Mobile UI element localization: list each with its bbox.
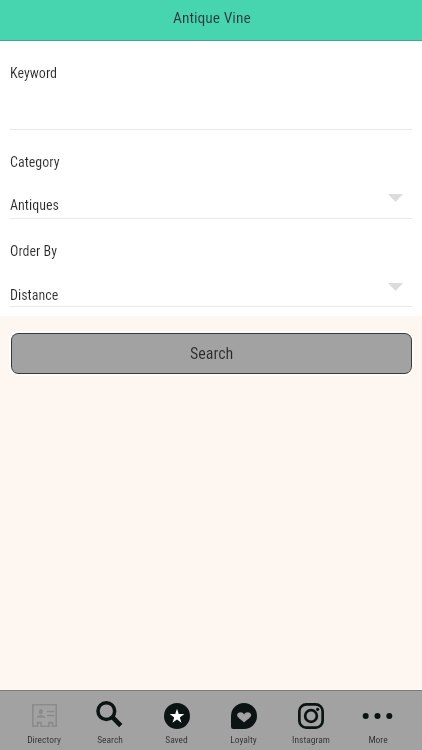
staticText: Category [10, 154, 60, 170]
staticText: Keyword [10, 65, 57, 81]
button[interactable]: Loyalty [210, 691, 277, 750]
button[interactable]: Search [12, 334, 411, 373]
staticText: Directory [27, 734, 61, 745]
other: Saved [164, 703, 190, 729]
staticText: Search [97, 734, 123, 745]
button[interactable]: Instagram [277, 691, 344, 750]
other: Loyalty [231, 703, 257, 729]
staticText: Search [190, 344, 234, 363]
button[interactable]: Search [77, 691, 143, 750]
staticText: Saved [165, 734, 188, 745]
staticText: Instagram [292, 734, 330, 745]
other: More [364, 712, 391, 720]
other: Search [97, 702, 124, 729]
staticText: Antique Vine [173, 9, 251, 27]
staticText: Distance [10, 287, 59, 303]
button[interactable]: Directory [11, 691, 77, 750]
button[interactable]: Saved [143, 691, 210, 750]
staticText: More [368, 734, 388, 745]
other: Instagram [298, 703, 324, 729]
staticText: Antiques [10, 197, 59, 213]
button[interactable]: More [344, 691, 411, 750]
other: Directory [32, 704, 57, 727]
staticText: Loyalty [230, 734, 257, 745]
staticText: Order By [10, 243, 58, 259]
